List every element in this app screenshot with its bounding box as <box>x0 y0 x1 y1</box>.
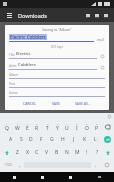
button[interactable]: Keyboard <box>85 172 114 182</box>
button[interactable]: , <box>15 159 24 171</box>
button[interactable]: A <box>6 133 16 146</box>
staticText: A <box>9 136 13 143</box>
staticText: 5 <box>47 122 49 125</box>
staticText: Y <box>56 125 59 132</box>
button[interactable]: 7 <box>62 120 72 133</box>
button[interactable]: Clear Title <box>99 53 105 59</box>
button[interactable]: Shift right <box>102 146 113 159</box>
staticText: Album <box>9 73 19 77</box>
staticText: B <box>55 149 59 156</box>
staticText: O <box>85 125 89 132</box>
button[interactable]: SAVE AS... <box>73 100 93 107</box>
staticText: K <box>83 136 87 143</box>
button[interactable]: M <box>72 146 82 159</box>
button[interactable]: Clear Artist <box>99 64 105 70</box>
button[interactable]: D <box>26 133 36 146</box>
staticText: C <box>35 149 39 156</box>
button[interactable]: Grid view <box>83 11 92 20</box>
staticText: Title <box>9 53 16 57</box>
button[interactable]: 3 <box>22 120 32 133</box>
staticText: ID3 tags <box>9 45 105 49</box>
staticText: ! <box>86 149 88 156</box>
staticText: R <box>35 125 39 132</box>
staticText: U <box>65 125 69 132</box>
button[interactable]: ? <box>92 146 102 159</box>
button[interactable]: 2 <box>12 120 22 133</box>
staticText: Cobblers <box>18 62 36 68</box>
staticText: S <box>20 136 23 143</box>
staticText: SAVE AS... <box>75 101 91 106</box>
button[interactable]: 8 <box>72 120 82 133</box>
staticText: Z <box>16 149 19 156</box>
staticText: M <box>75 149 80 156</box>
button[interactable]: B <box>52 146 62 159</box>
button[interactable]: 5 <box>42 120 52 133</box>
button[interactable]: F <box>36 133 46 146</box>
staticText: Q <box>5 125 9 132</box>
staticText: 9 <box>86 122 88 125</box>
staticText: Genre <box>9 91 19 95</box>
button[interactable]: G <box>46 133 57 146</box>
button[interactable]: ?123 <box>1 159 15 171</box>
button[interactable]: S <box>16 133 26 146</box>
button[interactable]: Shift <box>1 146 12 159</box>
button[interactable]: X <box>22 146 32 159</box>
staticText: ? <box>96 149 99 156</box>
staticText: Downloads <box>18 12 47 19</box>
button[interactable]: SAVE <box>50 100 62 107</box>
staticText: 2 <box>17 122 19 125</box>
staticText: G <box>50 136 54 143</box>
staticText: E <box>26 125 29 132</box>
button[interactable]: J <box>68 133 79 146</box>
button[interactable]: V <box>42 146 52 159</box>
button[interactable]: . <box>91 159 100 171</box>
staticText: 3 <box>27 122 29 125</box>
button[interactable]: Expand suggestions <box>107 114 112 119</box>
staticText: L <box>94 136 97 143</box>
button[interactable]: N <box>62 146 72 159</box>
button[interactable]: 0 <box>92 120 102 133</box>
staticText: Year <box>9 82 16 86</box>
button[interactable]: 1 <box>1 120 12 133</box>
staticText: T <box>46 125 49 132</box>
staticText: Saving to "Album" <box>9 27 105 32</box>
staticText: . <box>95 162 97 168</box>
staticText: I <box>76 125 78 132</box>
button[interactable]: CANCEL <box>21 100 38 107</box>
staticText: H <box>61 136 65 143</box>
staticText: CANCEL <box>23 101 36 106</box>
button[interactable]: 9 <box>82 120 92 133</box>
button[interactable]: Backspace <box>102 120 113 133</box>
button[interactable]: Z <box>12 146 22 159</box>
button[interactable]: Back <box>0 172 28 182</box>
button[interactable]: 4 <box>32 120 42 133</box>
staticText: , <box>19 162 21 168</box>
button[interactable]: Home <box>28 172 56 182</box>
staticText: 4 <box>36 122 38 125</box>
staticText: Electric Cobblers <box>10 34 46 40</box>
staticText: W <box>15 125 20 132</box>
staticText: 8 <box>76 122 78 125</box>
button[interactable]: Emoji <box>100 159 113 171</box>
button[interactable]: C <box>32 146 42 159</box>
staticText: J <box>73 136 75 143</box>
button[interactable]: L <box>90 133 101 146</box>
button[interactable]: Navigation drawer <box>4 10 14 20</box>
button[interactable]: 6 <box>52 120 62 133</box>
button[interactable]: Enter <box>101 133 113 146</box>
staticText: P <box>95 125 99 132</box>
staticText: V <box>45 149 49 156</box>
button[interactable]: Sort <box>92 11 101 20</box>
button[interactable]: More options <box>101 11 110 20</box>
button[interactable]: K <box>79 133 90 146</box>
staticText: F <box>40 136 43 143</box>
staticText: 1 <box>6 122 8 125</box>
staticText: D <box>29 136 33 143</box>
button[interactable]: H <box>57 133 68 146</box>
staticText: Electric <box>16 51 31 57</box>
button[interactable]: Recents <box>56 172 85 182</box>
button[interactable]: ! <box>82 146 92 159</box>
staticText: SAVE <box>52 101 60 106</box>
staticText: 7 <box>66 122 68 125</box>
